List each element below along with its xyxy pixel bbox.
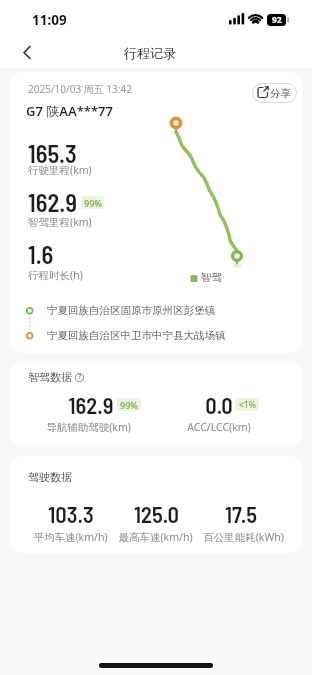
staticText: 0.0 [205, 391, 233, 418]
button[interactable] [12, 40, 44, 66]
staticText: 162.9 [28, 187, 78, 216]
staticText: 162.9 [68, 391, 114, 418]
staticText: 分享 [270, 87, 291, 100]
staticText: G7 陕AA***77 [26, 102, 113, 120]
staticText: 行程时长(h) [28, 268, 83, 282]
staticText: 最高车速(km/h) [118, 530, 193, 544]
staticText: 百公里能耗(kWh) [203, 530, 284, 544]
staticText: 1.6 [28, 239, 54, 268]
staticText: 99% [84, 197, 102, 209]
staticText: 17.5 [225, 500, 257, 527]
staticText: 92 [272, 14, 282, 26]
staticText: 行程记录 [124, 45, 176, 61]
staticText: 行驶里程(km) [28, 163, 92, 177]
staticText: 平均车速(km/h) [33, 530, 108, 544]
staticText: ? [78, 372, 82, 381]
staticText: 11:09 [32, 11, 67, 29]
staticText: 智驾数据 [28, 370, 72, 384]
staticText: 智驾里程(km) [28, 215, 92, 229]
staticText: 宁夏回族自治区固原市原州区彭堡镇 [47, 304, 215, 317]
button[interactable] [70, 372, 80, 382]
staticText: 宁夏回族自治区中卫市中宁县大战场镇 [47, 329, 226, 342]
staticText: 99% [120, 399, 138, 411]
staticText: 导航辅助驾驶(km) [46, 420, 131, 434]
staticText: 103.3 [48, 500, 94, 527]
staticText: ACC/LCC(km) [187, 420, 251, 434]
staticText: 2025/10/03 周五 13:42 [28, 82, 132, 96]
staticText: 智驾 [201, 271, 222, 284]
staticText: 165.3 [28, 138, 77, 167]
staticText: 驾驶数据 [28, 470, 72, 484]
staticText: <1% [239, 399, 256, 411]
button[interactable]: 分享 [252, 83, 297, 103]
staticText: 125.0 [134, 500, 179, 527]
